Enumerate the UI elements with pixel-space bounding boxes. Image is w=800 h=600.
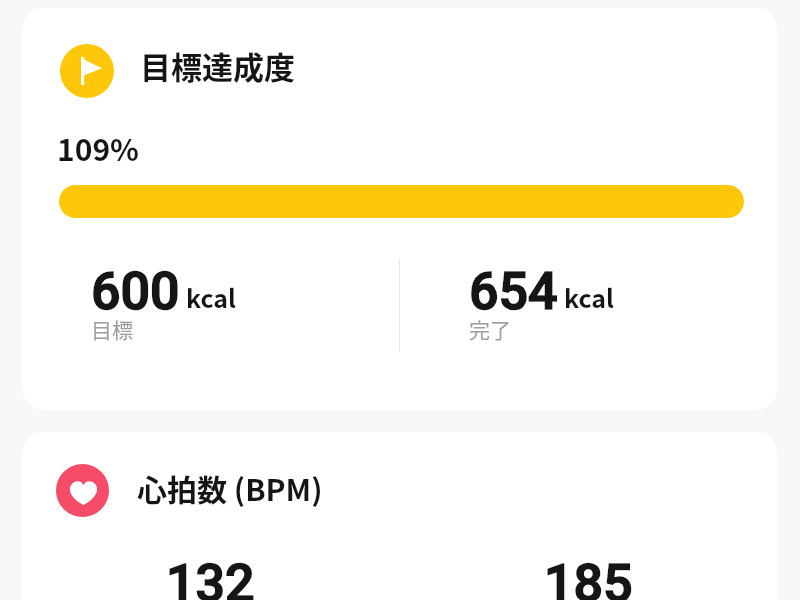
staticText: 完了 [469,314,511,344]
staticText: 600 [91,261,180,322]
button[interactable]: Goal [22,8,777,410]
button[interactable]: Heart rate [22,432,777,600]
staticText: 132 [166,553,255,600]
staticText: 目標達成度 [140,43,295,88]
staticText: 目標 [91,314,133,344]
staticText: 心拍数 (BPM) [137,466,323,509]
staticText: 654 [469,261,558,322]
other: Heart rate [56,464,109,517]
other: Goal [60,44,114,98]
staticText: 185 [544,553,633,600]
staticText: kcal [564,279,614,315]
staticText: 109% [57,126,139,169]
staticText: kcal [186,279,236,315]
